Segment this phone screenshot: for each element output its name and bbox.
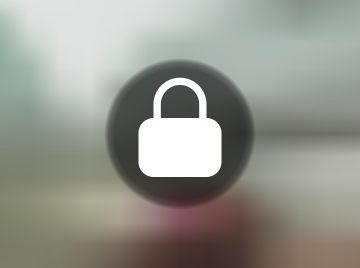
- button[interactable]: Locked content: [104, 58, 256, 210]
